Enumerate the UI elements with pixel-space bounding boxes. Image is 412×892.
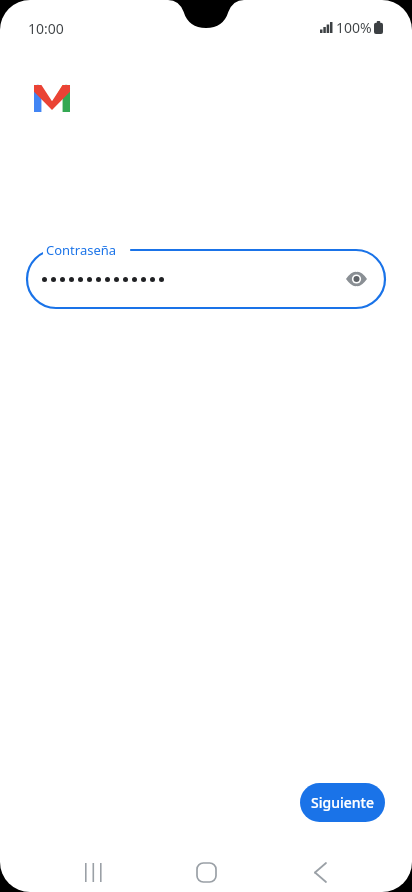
button[interactable]: Recientes — [68, 848, 116, 892]
button[interactable]: Mostrar contraseña — [341, 264, 371, 294]
staticText: Siguiente — [311, 793, 374, 812]
button[interactable]: Mostrar contraseña — [27, 250, 385, 308]
staticText: 10:00 — [28, 19, 64, 38]
staticText: 100% — [336, 18, 372, 37]
staticText: Contraseña — [46, 241, 117, 259]
button[interactable]: Siguiente — [300, 783, 385, 822]
button[interactable]: Atrás — [296, 848, 344, 892]
button[interactable]: Inicio — [182, 848, 230, 892]
